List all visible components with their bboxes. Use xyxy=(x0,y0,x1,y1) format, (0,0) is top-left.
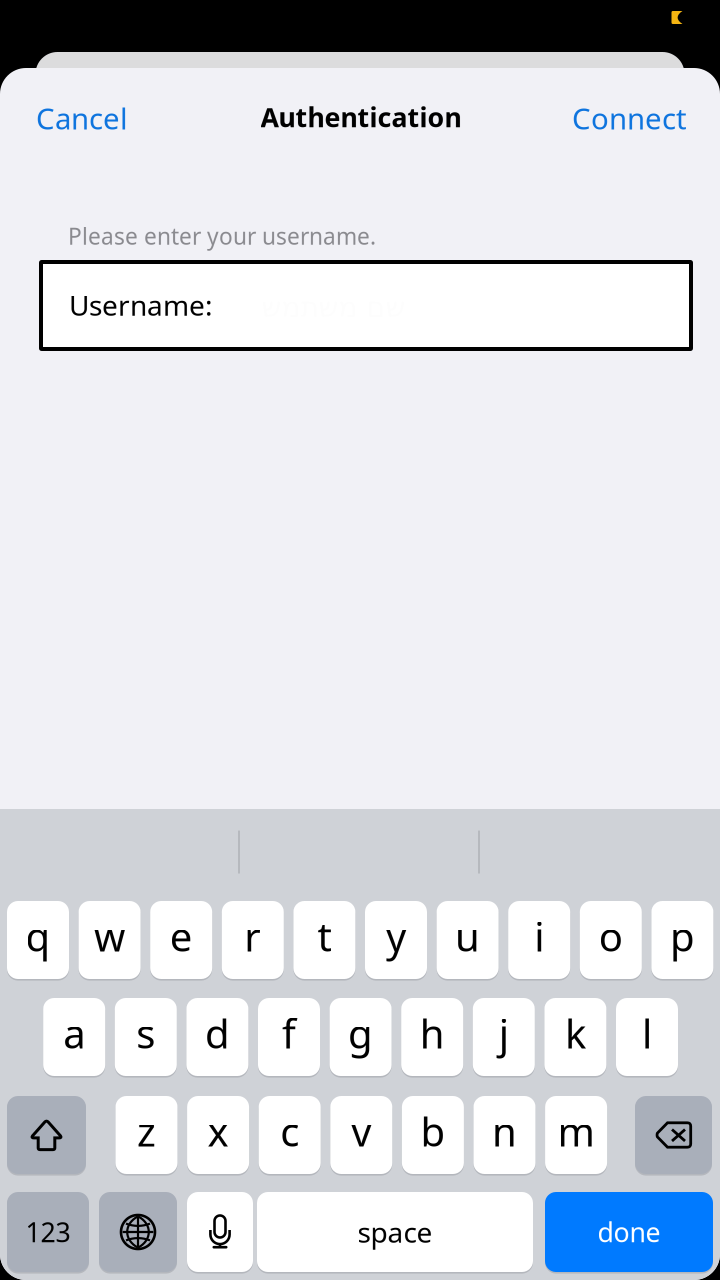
staticText: f xyxy=(282,1006,296,1059)
staticText: o xyxy=(599,909,623,962)
staticText: a xyxy=(63,1006,85,1059)
button[interactable]: u xyxy=(437,901,499,979)
staticText: r xyxy=(244,909,261,962)
staticText: l xyxy=(642,1006,652,1059)
staticText: g xyxy=(348,1006,373,1059)
staticText: m xyxy=(558,1104,595,1157)
button[interactable]: p xyxy=(651,901,713,979)
button[interactable]: a xyxy=(43,998,105,1076)
button[interactable]: c xyxy=(259,1096,321,1174)
button[interactable]: v xyxy=(330,1096,392,1174)
button[interactable]: o xyxy=(580,901,642,979)
button[interactable]: 123 xyxy=(7,1192,89,1272)
button[interactable]: e xyxy=(150,901,212,979)
staticText: done xyxy=(597,1214,660,1250)
staticText: n xyxy=(492,1104,517,1157)
staticText: Username: xyxy=(69,286,213,324)
button[interactable]: Cancel xyxy=(36,88,236,148)
button[interactable]: k xyxy=(544,998,606,1076)
button[interactable]: m xyxy=(545,1096,607,1174)
button[interactable]: Delete xyxy=(635,1096,712,1174)
staticText: u xyxy=(455,909,480,962)
button[interactable]: Dictation xyxy=(187,1192,253,1272)
button[interactable]: x xyxy=(187,1096,249,1174)
staticText: 123 xyxy=(25,1214,70,1250)
button[interactable]: d xyxy=(186,998,248,1076)
button[interactable]: t xyxy=(293,901,355,979)
button[interactable]: f xyxy=(258,998,320,1076)
staticText: w xyxy=(94,909,125,962)
button[interactable]: y xyxy=(365,901,427,979)
staticText: Cancel xyxy=(36,98,128,137)
staticText: c xyxy=(280,1104,299,1157)
button[interactable]: w xyxy=(79,901,141,979)
staticText: k xyxy=(565,1006,586,1059)
staticText: z xyxy=(137,1104,156,1157)
staticText: j xyxy=(499,1006,509,1059)
staticText: space xyxy=(357,1213,432,1251)
staticText: p xyxy=(670,909,695,962)
staticText: Connect xyxy=(572,98,687,137)
staticText: e xyxy=(170,909,193,962)
button[interactable]: Connect xyxy=(467,88,687,148)
staticText: y xyxy=(386,909,406,962)
staticText: Please enter your username. xyxy=(68,221,376,251)
button[interactable]: s xyxy=(115,998,177,1076)
button[interactable]: n xyxy=(473,1096,535,1174)
button[interactable]: h xyxy=(401,998,463,1076)
button[interactable]: Next keyboard xyxy=(99,1192,177,1272)
button[interactable]: l xyxy=(616,998,678,1076)
staticText: t xyxy=(317,909,331,962)
button[interactable]: j xyxy=(473,998,535,1076)
staticText: i xyxy=(534,909,544,962)
staticText: q xyxy=(25,909,50,962)
button[interactable]: z xyxy=(115,1096,177,1174)
staticText: b xyxy=(420,1104,445,1157)
button[interactable]: b xyxy=(402,1096,464,1174)
staticText: d xyxy=(205,1006,230,1059)
button[interactable]: r xyxy=(222,901,284,979)
staticText: v xyxy=(351,1104,371,1157)
button[interactable]: Shift xyxy=(7,1096,86,1174)
staticText: x xyxy=(208,1104,229,1157)
button[interactable]: g xyxy=(330,998,392,1076)
staticText: Authentication xyxy=(260,99,461,135)
button[interactable]: q xyxy=(7,901,69,979)
staticText: h xyxy=(420,1006,445,1059)
button[interactable]: i xyxy=(508,901,570,979)
button[interactable]: done xyxy=(545,1192,713,1272)
staticText: s xyxy=(136,1006,155,1059)
button[interactable]: space xyxy=(257,1192,533,1272)
